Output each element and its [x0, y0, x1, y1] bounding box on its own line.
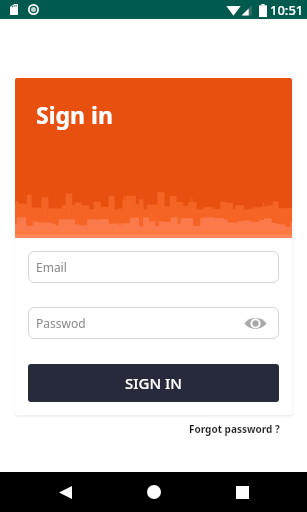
- button[interactable]: Passwod: [28, 307, 279, 339]
- button[interactable]: SIGN IN: [28, 364, 279, 402]
- button[interactable]: Home: [130, 472, 178, 512]
- other: Show password: [244, 316, 267, 331]
- staticText: Email: [36, 259, 67, 275]
- staticText: SIGN IN: [125, 373, 182, 393]
- staticText: Passwod: [36, 315, 86, 331]
- staticText: Sign in: [36, 99, 113, 130]
- button[interactable]: Back: [41, 472, 89, 512]
- staticText: 10:51: [270, 1, 304, 19]
- button[interactable]: Email: [28, 251, 279, 283]
- button[interactable]: Forgot password ?: [189, 422, 280, 436]
- button[interactable]: Recents: [218, 472, 266, 512]
